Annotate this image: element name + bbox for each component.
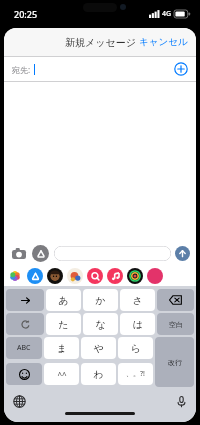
button[interactable]: は bbox=[120, 313, 155, 335]
staticText: ABC bbox=[17, 343, 31, 353]
button[interactable]: や bbox=[81, 337, 116, 359]
button[interactable]: 宛先: bbox=[4, 57, 196, 81]
staticText: 、。?! bbox=[126, 369, 145, 379]
staticText: ^^ bbox=[57, 369, 67, 380]
button[interactable]: Appストア bbox=[32, 245, 49, 262]
button[interactable]: ABC bbox=[6, 337, 42, 359]
button[interactable]: 連絡先を追加 bbox=[174, 62, 188, 76]
button[interactable]: App bbox=[87, 268, 103, 284]
staticText: 改行 bbox=[168, 358, 182, 367]
staticText: か bbox=[95, 294, 106, 307]
button[interactable]: ^^ bbox=[44, 363, 79, 385]
button[interactable] bbox=[6, 313, 44, 335]
button[interactable]: App bbox=[107, 268, 123, 284]
staticText: さ bbox=[132, 294, 143, 307]
staticText: キャンセル bbox=[139, 36, 188, 48]
button[interactable]: わ bbox=[81, 363, 116, 385]
staticText: 4G bbox=[162, 9, 172, 19]
staticText: 20:25 bbox=[14, 8, 38, 20]
staticText: は bbox=[132, 318, 143, 331]
button[interactable]: キーボード切り替え bbox=[10, 392, 28, 410]
button[interactable]: た bbox=[46, 313, 81, 335]
staticText: 新規メッセージ bbox=[65, 36, 136, 49]
staticText: 空白 bbox=[169, 320, 183, 329]
staticText: や bbox=[93, 342, 104, 355]
button[interactable] bbox=[6, 289, 44, 311]
button[interactable] bbox=[157, 289, 194, 311]
staticText: な bbox=[95, 318, 106, 331]
button[interactable]: App bbox=[27, 268, 43, 284]
button[interactable]: か bbox=[83, 289, 118, 311]
button[interactable]: な bbox=[83, 313, 118, 335]
button[interactable]: 送信 bbox=[175, 246, 190, 261]
staticText: ま bbox=[56, 342, 67, 355]
button[interactable]: あ bbox=[46, 289, 81, 311]
staticText: ら bbox=[130, 342, 141, 355]
button[interactable]: 、。?! bbox=[118, 363, 153, 385]
staticText: わ bbox=[93, 368, 104, 381]
button[interactable]: カメラ bbox=[10, 245, 27, 262]
button[interactable]: キャンセル bbox=[131, 31, 196, 53]
button[interactable]: ら bbox=[118, 337, 153, 359]
button[interactable]: 改行 bbox=[155, 337, 194, 387]
button[interactable]: 空白 bbox=[157, 313, 194, 335]
staticText: あ bbox=[58, 294, 69, 307]
button[interactable]: App bbox=[67, 268, 83, 284]
staticText: た bbox=[58, 318, 69, 331]
button[interactable]: App bbox=[7, 268, 23, 284]
button[interactable]: さ bbox=[120, 289, 155, 311]
staticText: 宛先: bbox=[12, 64, 31, 75]
button[interactable]: App bbox=[127, 268, 143, 284]
button[interactable]: 音声入力 bbox=[172, 392, 190, 410]
button[interactable]: App bbox=[147, 268, 163, 284]
button[interactable] bbox=[54, 246, 171, 261]
button[interactable]: ま bbox=[44, 337, 79, 359]
button[interactable] bbox=[6, 363, 42, 385]
button[interactable]: App bbox=[47, 268, 63, 284]
